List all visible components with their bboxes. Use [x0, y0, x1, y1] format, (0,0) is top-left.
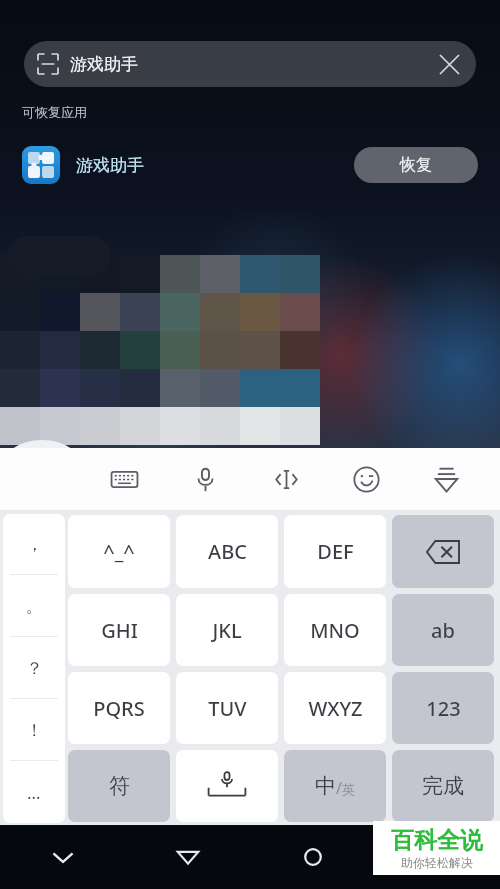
button[interactable]: JKL	[176, 594, 278, 666]
button[interactable]: Voice input	[165, 448, 246, 510]
button[interactable]: ？	[3, 637, 65, 699]
staticText: ，	[26, 534, 43, 555]
staticText: 123	[426, 695, 461, 722]
button[interactable]: Collapse keyboard	[0, 825, 125, 889]
staticText: TUV	[208, 695, 247, 722]
button[interactable]: WXYZ	[284, 672, 386, 744]
button[interactable]: Emoji	[326, 448, 406, 510]
button[interactable]: 游戏助手	[24, 41, 476, 87]
staticText: 可恢复应用	[22, 104, 87, 120]
button[interactable]: PQRS	[68, 672, 170, 744]
staticText: PQRS	[93, 695, 145, 722]
button[interactable]: Clear	[436, 51, 462, 77]
button[interactable]: Hide keyboard	[406, 448, 486, 510]
staticText: 助你轻松解决	[401, 855, 473, 870]
staticText: /	[336, 777, 342, 799]
button[interactable]: 中	[284, 750, 386, 822]
staticText: ab	[431, 617, 455, 644]
button[interactable]: Recents	[375, 825, 500, 889]
staticText: ！	[26, 720, 43, 741]
staticText: JKL	[212, 617, 242, 644]
staticText: ABC	[208, 538, 247, 565]
button[interactable]: 游戏助手	[0, 136, 500, 194]
button[interactable]: Back	[125, 825, 250, 889]
button[interactable]: Home	[250, 825, 375, 889]
staticText: WXYZ	[308, 695, 363, 722]
button[interactable]: 123	[392, 672, 494, 744]
button[interactable]: ！	[3, 699, 65, 761]
button[interactable]: GHI	[68, 594, 170, 666]
staticText: GHI	[101, 617, 138, 644]
button[interactable]: ^_^	[68, 515, 170, 588]
button[interactable]: Backspace	[392, 515, 494, 588]
button[interactable]: Cursor move	[246, 448, 326, 510]
staticText: DEF	[317, 538, 354, 565]
button[interactable]: 恢复	[354, 147, 478, 183]
button[interactable]: ab	[392, 594, 494, 666]
staticText: 游戏助手	[76, 155, 144, 176]
staticText: 中	[315, 773, 336, 799]
button[interactable]: ，	[3, 514, 65, 575]
button[interactable]: MNO	[284, 594, 386, 666]
button[interactable]: 符	[68, 750, 170, 822]
button[interactable]: TUV	[176, 672, 278, 744]
button[interactable]: 。	[3, 575, 65, 637]
staticText: ？	[26, 658, 43, 679]
staticText: 英	[342, 781, 355, 797]
staticText: 游戏助手	[70, 54, 138, 75]
button[interactable]: ABC	[176, 515, 278, 588]
staticText: 完成	[422, 773, 464, 799]
staticText: 恢复	[400, 155, 432, 175]
button[interactable]: Keyboard layout	[84, 448, 165, 510]
staticText: ^_^	[103, 538, 135, 565]
staticText: …	[27, 781, 41, 804]
staticText: 。	[26, 596, 43, 617]
button[interactable]: 完成	[392, 750, 494, 822]
button[interactable]: Space	[176, 750, 278, 822]
button[interactable]: DEF	[284, 515, 386, 588]
button[interactable]: …	[3, 761, 65, 823]
staticText: MNO	[310, 617, 360, 644]
staticText: 百科全说	[391, 826, 483, 855]
staticText: 符	[109, 773, 130, 799]
